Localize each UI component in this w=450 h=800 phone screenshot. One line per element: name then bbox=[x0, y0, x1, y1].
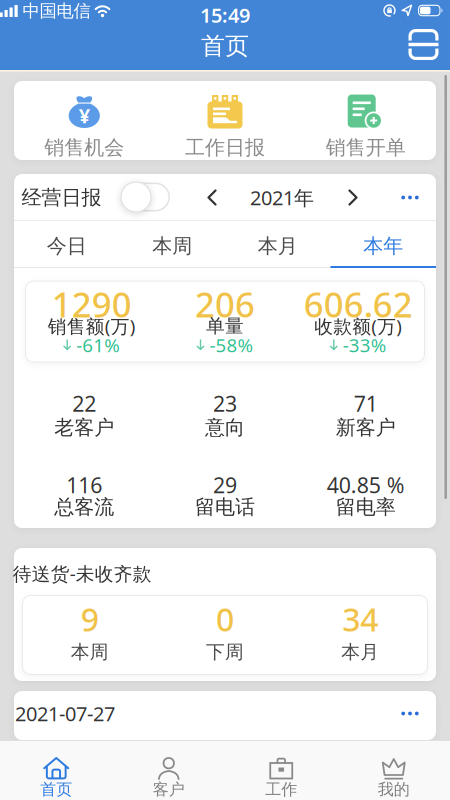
button[interactable]: 客户 bbox=[112, 740, 225, 800]
button[interactable]: 我的 bbox=[337, 740, 450, 800]
staticText: 0 bbox=[216, 598, 234, 640]
button[interactable]: ¥ bbox=[14, 81, 155, 160]
button[interactable]: 本年 bbox=[330, 223, 436, 269]
staticText: 单量 bbox=[206, 314, 244, 337]
staticText: 经营日报 bbox=[21, 185, 101, 210]
staticText: 116 bbox=[66, 471, 102, 499]
staticText: 销售开单 bbox=[326, 135, 406, 160]
staticText: 1290 bbox=[52, 281, 132, 327]
staticText: 今日 bbox=[47, 234, 87, 258]
button[interactable] bbox=[338, 182, 368, 212]
staticText: 606.62 bbox=[304, 281, 413, 327]
staticText: 留电率 bbox=[336, 495, 396, 519]
staticText: 15:49 bbox=[200, 2, 250, 28]
staticText: 本年 bbox=[363, 234, 403, 258]
button[interactable]: 首页 bbox=[0, 740, 112, 800]
staticText: 新客户 bbox=[336, 415, 396, 440]
staticText: -58% bbox=[209, 333, 253, 357]
button[interactable] bbox=[393, 182, 427, 212]
staticText: 34 bbox=[342, 598, 378, 640]
staticText: 本月 bbox=[341, 640, 379, 663]
staticText: 本周 bbox=[71, 640, 109, 663]
button[interactable]: 工作日报 bbox=[155, 81, 295, 160]
staticText: 待送货-未收齐款 bbox=[13, 561, 152, 586]
staticText: 总客流 bbox=[54, 495, 114, 519]
staticText: 工作 bbox=[265, 780, 297, 799]
staticText: 意向 bbox=[205, 415, 245, 440]
staticText: 工作日报 bbox=[185, 135, 265, 160]
staticText: 9 bbox=[81, 598, 99, 640]
button[interactable]: 工作 bbox=[225, 740, 337, 800]
staticText: 71 bbox=[354, 389, 378, 418]
staticText: 本周 bbox=[152, 234, 192, 258]
staticText: -61% bbox=[76, 333, 120, 357]
button[interactable] bbox=[393, 698, 427, 728]
button[interactable] bbox=[408, 29, 438, 60]
staticText: 40.85 % bbox=[327, 471, 405, 499]
staticText: 首页 bbox=[40, 780, 72, 799]
staticText: 中国电信 bbox=[22, 0, 90, 22]
staticText: 销售额(万) bbox=[48, 314, 136, 338]
button[interactable]: 销售开单 bbox=[295, 81, 436, 160]
staticText: 留电话 bbox=[195, 495, 255, 519]
staticText: 销售机会 bbox=[44, 135, 124, 160]
staticText: 206 bbox=[195, 281, 255, 327]
staticText: 收款额(万) bbox=[314, 314, 402, 338]
staticText: -33% bbox=[343, 333, 387, 357]
button[interactable]: 今日 bbox=[14, 223, 119, 269]
staticText: 老客户 bbox=[54, 415, 114, 440]
staticText: 本月 bbox=[258, 234, 298, 258]
button[interactable]: 本周 bbox=[119, 223, 225, 269]
button[interactable] bbox=[197, 182, 227, 212]
staticText: 22 bbox=[72, 389, 96, 418]
staticText: 29 bbox=[213, 471, 237, 499]
staticText: 2021年 bbox=[250, 184, 314, 211]
staticText: 我的 bbox=[378, 780, 410, 799]
button[interactable] bbox=[122, 181, 170, 212]
staticText: 首页 bbox=[201, 31, 249, 61]
staticText: 2021-07-27 bbox=[15, 700, 115, 727]
button[interactable]: 本月 bbox=[225, 223, 330, 269]
staticText: 23 bbox=[213, 389, 237, 418]
staticText: 下周 bbox=[206, 640, 244, 663]
staticText: 客户 bbox=[153, 780, 185, 799]
staticText: ¥ bbox=[79, 102, 90, 129]
